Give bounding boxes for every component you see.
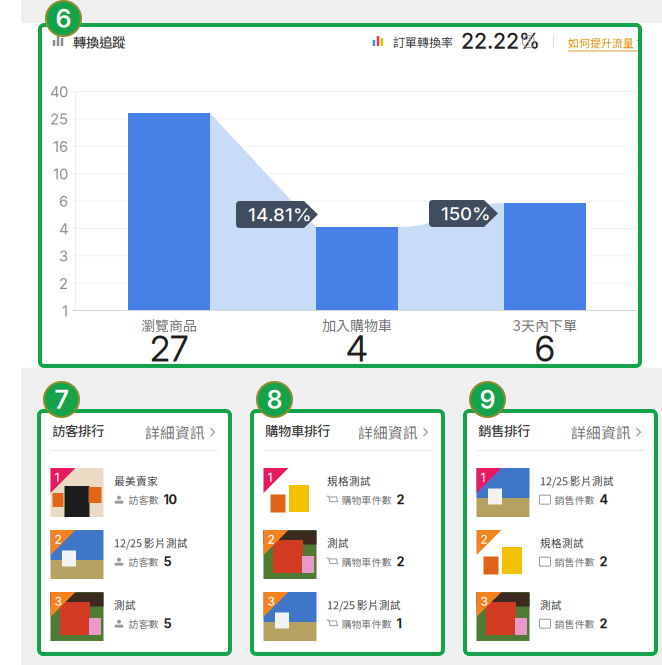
staticText: 最美賣家 xyxy=(114,473,158,488)
staticText: 瀏覽商品 xyxy=(141,315,197,335)
staticText: 2 xyxy=(599,616,607,631)
staticText: 2 xyxy=(59,275,68,292)
staticText: 14.81% xyxy=(248,203,312,226)
staticText: 銷售件數 xyxy=(554,554,594,569)
staticText: 7 xyxy=(54,384,68,415)
button[interactable]: 2 xyxy=(463,522,658,584)
staticText: 6 xyxy=(55,3,71,34)
button[interactable]: 3 xyxy=(463,584,658,646)
staticText: 2 xyxy=(54,532,61,546)
staticText: 12/25 影片測試 xyxy=(327,597,401,612)
staticText: 3天內下單 xyxy=(513,315,577,335)
staticText: 2 xyxy=(267,532,274,546)
staticText: 1 xyxy=(267,470,272,484)
staticText: 27 xyxy=(150,328,188,370)
staticText: 訪客排行 xyxy=(52,420,104,440)
staticText: 詳細資訊 xyxy=(571,421,631,443)
staticText: 轉換追蹤 xyxy=(73,32,125,51)
staticText: 6 xyxy=(534,328,555,370)
staticText: 測試 xyxy=(327,535,349,550)
button[interactable]: 詳細資訊 xyxy=(141,415,219,449)
button[interactable]: 1 xyxy=(250,460,445,522)
staticText: 12/25 影片測試 xyxy=(114,535,188,550)
staticText: 1 xyxy=(480,470,485,484)
staticText: 2 xyxy=(480,532,487,546)
staticText: 如何提升流量？ xyxy=(568,35,645,50)
staticText: 購物車排行 xyxy=(265,420,330,440)
button[interactable]: 1 xyxy=(37,460,232,522)
staticText: 測試 xyxy=(540,597,562,612)
staticText: 10 xyxy=(163,492,177,507)
staticText: 訂單轉換率 xyxy=(393,33,453,50)
staticText: 5 xyxy=(163,616,171,631)
staticText: 銷售件數 xyxy=(554,492,594,507)
staticText: 銷售排行 xyxy=(478,420,530,440)
staticText: 3 xyxy=(59,247,68,265)
staticText: 4 xyxy=(59,220,68,238)
staticText: 12/25 影片測試 xyxy=(540,473,614,488)
staticText: 訪客數 xyxy=(128,492,158,507)
staticText: 10 xyxy=(53,165,68,183)
staticText: 詳細資訊 xyxy=(358,421,418,443)
button[interactable]: 如何提升流量？ xyxy=(568,35,645,51)
staticText: 2 xyxy=(599,554,607,569)
staticText: 購物車件數 xyxy=(341,492,391,507)
staticText: 5 xyxy=(163,554,171,569)
staticText: 22.22% xyxy=(461,28,540,54)
button[interactable]: 3 xyxy=(37,584,232,646)
staticText: 測試 xyxy=(114,597,136,612)
button[interactable]: 詳細資訊 xyxy=(567,415,645,449)
button[interactable]: 詳細資訊 xyxy=(354,415,432,449)
staticText: 訪客數 xyxy=(128,616,158,631)
staticText: 規格測試 xyxy=(540,535,584,550)
staticText: 規格測試 xyxy=(327,473,371,488)
staticText: 購物車件數 xyxy=(341,616,391,631)
button[interactable]: 2 xyxy=(250,522,445,584)
staticText: 150% xyxy=(441,202,491,225)
staticText: 銷售件數 xyxy=(554,616,594,631)
staticText: 3 xyxy=(480,594,488,608)
button[interactable]: 2 xyxy=(37,522,232,584)
staticText: 1 xyxy=(396,616,401,631)
staticText: 40 xyxy=(50,83,68,101)
button[interactable]: 說明 xyxy=(520,33,537,50)
staticText: 3 xyxy=(267,594,275,608)
staticText: 9 xyxy=(479,384,495,415)
staticText: ? xyxy=(526,35,531,48)
staticText: 詳細資訊 xyxy=(145,421,205,443)
staticText: 8 xyxy=(266,384,282,415)
staticText: 購物車件數 xyxy=(341,554,391,569)
staticText: 1 xyxy=(62,302,68,320)
staticText: 加入購物車 xyxy=(322,315,392,335)
staticText: 16 xyxy=(53,138,68,155)
staticText: 1 xyxy=(54,470,59,484)
staticText: 2 xyxy=(396,492,404,507)
staticText: 訪客數 xyxy=(128,554,158,569)
staticText: 3 xyxy=(54,594,62,608)
staticText: 4 xyxy=(599,492,608,507)
staticText: 25 xyxy=(50,110,68,128)
staticText: 6 xyxy=(59,193,68,210)
staticText: 2 xyxy=(396,554,404,569)
button[interactable]: 1 xyxy=(463,460,658,522)
button[interactable]: 3 xyxy=(250,584,445,646)
staticText: 4 xyxy=(346,328,368,370)
